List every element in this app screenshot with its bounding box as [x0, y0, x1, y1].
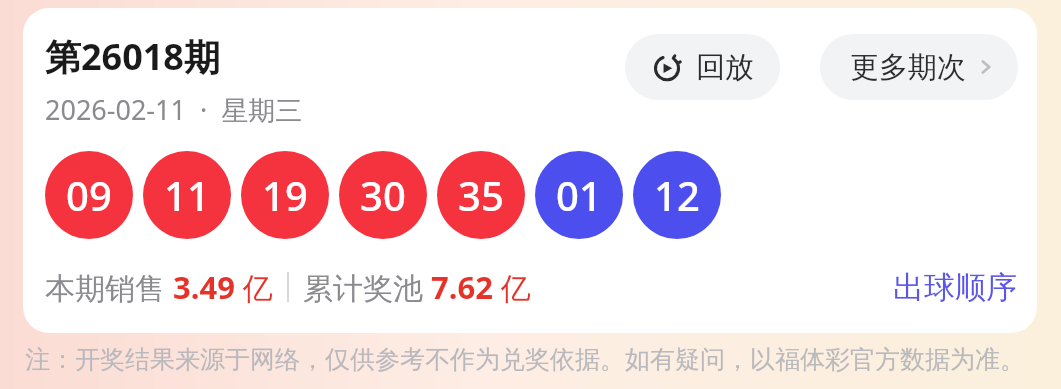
staticText: 出球顺序 [893, 268, 1017, 307]
button[interactable]: 12 [633, 151, 721, 239]
staticText: 35 [458, 168, 504, 222]
staticText: 第26018期 [45, 32, 220, 81]
staticText: 3.49 [173, 266, 235, 308]
staticText: 01 [556, 168, 602, 222]
staticText: 亿 [235, 267, 273, 308]
staticText: 累计奖池 [303, 267, 431, 308]
other: Replay [651, 51, 683, 83]
button[interactable]: 更多期次 [820, 34, 1018, 100]
staticText: 09 [66, 168, 112, 222]
staticText: 11 [164, 168, 210, 222]
button[interactable]: 11 [143, 151, 231, 239]
button[interactable]: Replay [625, 34, 780, 100]
button[interactable]: 35 [437, 151, 525, 239]
button[interactable]: 19 [241, 151, 329, 239]
staticText: 注：开奖结果来源于网络，仅供参考不作为兑奖依据。如有疑问，以福体彩官方数据为准。 [25, 344, 1025, 375]
staticText: 回放 [696, 49, 754, 86]
staticText: 2026-02-11 · 星期三 [45, 91, 303, 128]
staticText: 30 [360, 168, 406, 222]
staticText: 19 [262, 168, 308, 222]
button[interactable]: 01 [535, 151, 623, 239]
button[interactable]: 09 [45, 151, 133, 239]
staticText: 12 [654, 168, 700, 222]
staticText: 本期销售 [45, 267, 173, 308]
staticText: 7.62 [431, 266, 493, 308]
button[interactable]: 出球顺序 [893, 268, 1017, 307]
button[interactable]: 30 [339, 151, 427, 239]
staticText: 更多期次 [850, 49, 966, 86]
staticText: 亿 [493, 267, 531, 308]
